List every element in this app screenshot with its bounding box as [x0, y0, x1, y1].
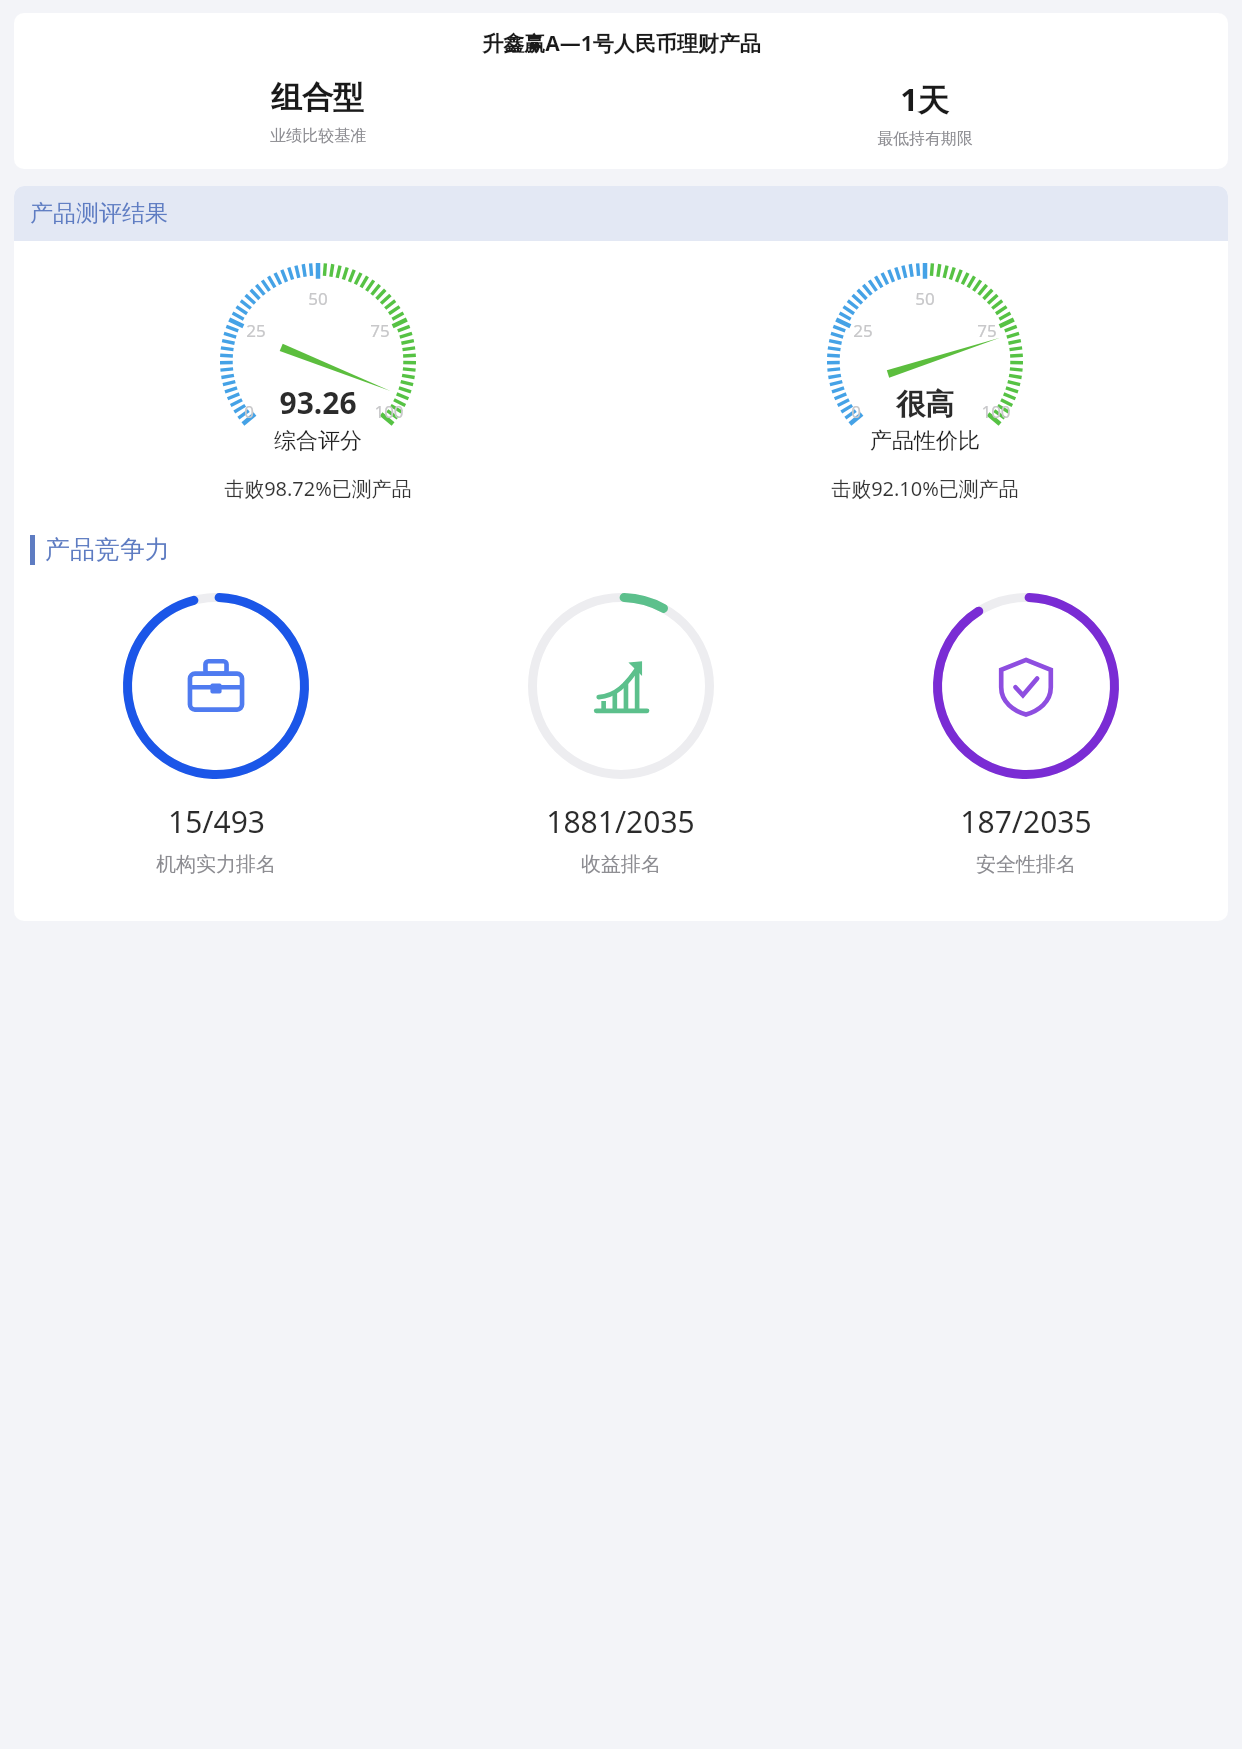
staticText: 50	[308, 287, 328, 310]
staticText: 击败98.72%已测产品	[224, 475, 412, 502]
staticText: 组合型	[271, 78, 364, 117]
staticText: 187/2035	[960, 801, 1092, 842]
staticText: 25	[246, 319, 266, 342]
staticText: 业绩比较基准	[270, 126, 366, 146]
staticText: 安全性排名	[976, 852, 1076, 877]
staticText: 75	[977, 319, 997, 342]
staticText: 50	[915, 287, 935, 310]
staticText: 产品性价比	[870, 427, 980, 455]
staticText: 很高	[896, 386, 954, 423]
staticText: 0	[851, 400, 861, 423]
staticText: 1881/2035	[546, 801, 695, 842]
staticText: 击败92.10%已测产品	[831, 475, 1019, 502]
button[interactable]: 升鑫赢A—1号人民币理财产品	[14, 13, 1228, 169]
button[interactable]: 产品测评结果	[14, 186, 1228, 241]
staticText: 1天	[900, 78, 949, 120]
staticText: 0	[244, 400, 254, 423]
staticText: 产品竞争力	[45, 534, 170, 565]
button[interactable]: 1天	[621, 78, 1228, 149]
staticText: 100	[374, 400, 404, 423]
button[interactable]: Return ranking	[418, 591, 823, 877]
staticText: 最低持有期限	[877, 129, 973, 149]
staticText: 综合评分	[274, 427, 362, 455]
button[interactable]: 50	[14, 261, 621, 461]
staticText: 25	[853, 319, 873, 342]
staticText: 100	[981, 400, 1011, 423]
button[interactable]: 50	[621, 261, 1228, 461]
button[interactable]: Safety ranking	[823, 591, 1228, 877]
staticText: 产品测评结果	[30, 199, 168, 228]
staticText: 机构实力排名	[156, 852, 276, 877]
staticText: 升鑫赢A—1号人民币理财产品	[482, 29, 761, 58]
staticText: 75	[370, 319, 390, 342]
staticText: 收益排名	[581, 852, 661, 877]
staticText: 93.26	[279, 382, 357, 423]
button[interactable]: 组合型	[14, 78, 621, 146]
staticText: 15/493	[168, 801, 265, 842]
button[interactable]: Institution strength ranking	[14, 591, 418, 877]
